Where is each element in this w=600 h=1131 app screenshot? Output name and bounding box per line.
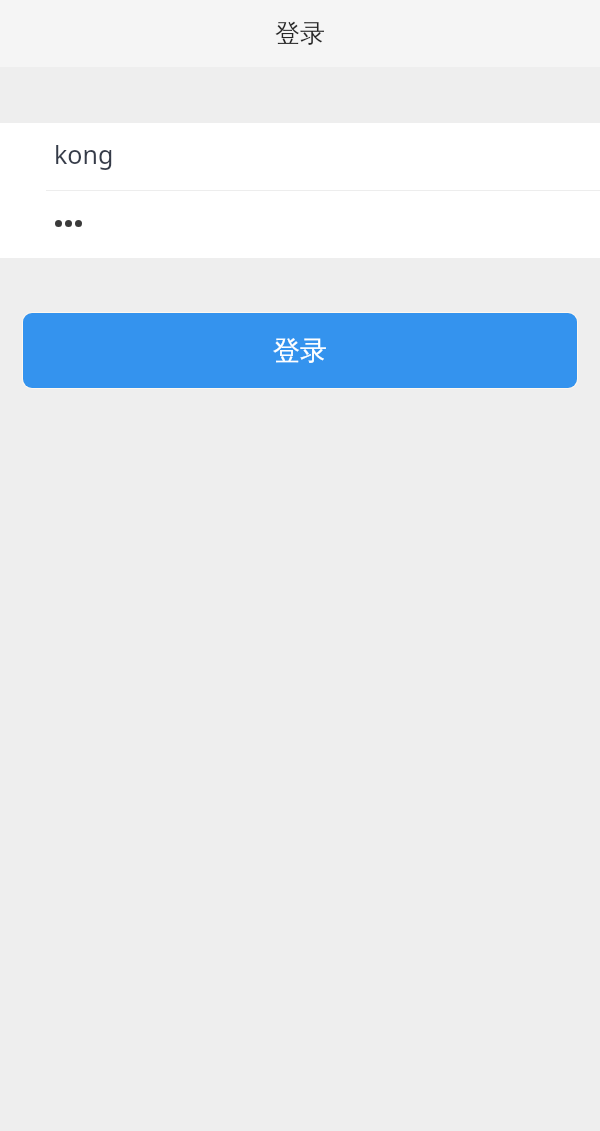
staticText: 登录 bbox=[275, 18, 325, 49]
button[interactable]: Password bbox=[0, 191, 600, 258]
staticText: kong bbox=[54, 137, 114, 171]
button[interactable]: 登录 bbox=[23, 313, 577, 388]
button[interactable]: kong bbox=[0, 123, 600, 190]
staticText: 登录 bbox=[273, 334, 327, 368]
